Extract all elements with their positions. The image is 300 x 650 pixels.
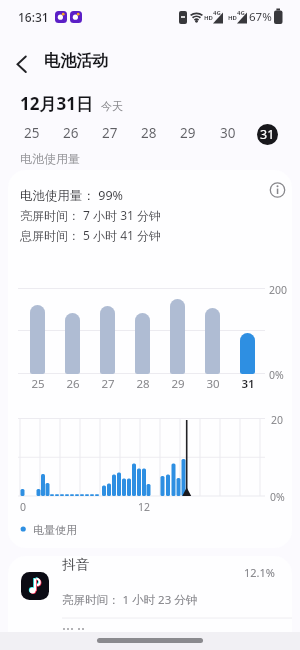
button[interactable] <box>8 556 292 618</box>
staticText: 27 <box>102 124 118 142</box>
staticText: 12月31日 <box>20 92 93 115</box>
button[interactable]: 30 <box>211 122 245 144</box>
staticText: 4G <box>213 9 221 17</box>
staticText: 200 <box>269 283 288 297</box>
staticText: 4G <box>237 9 245 17</box>
staticText: 29 <box>166 376 190 392</box>
staticText: 27 <box>96 376 120 392</box>
staticText: 息屏时间： 5 小时 41 分钟 <box>20 227 162 243</box>
staticText: 16:31 <box>18 9 49 25</box>
button[interactable]: 电池活动 <box>44 51 108 71</box>
staticText: 0 <box>20 500 27 514</box>
staticText: 亮屏时间： 1 小时 23 分钟 <box>62 592 198 608</box>
staticText: 31 <box>260 126 275 143</box>
staticText: 25 <box>24 124 40 142</box>
staticText: 电池使用量： 99% <box>20 187 123 204</box>
staticText: 30 <box>201 376 225 392</box>
staticText: 12 <box>138 500 151 514</box>
staticText: 26 <box>61 376 85 392</box>
button[interactable]: 27 <box>93 122 127 144</box>
staticText: 26 <box>63 124 79 142</box>
staticText: 31 <box>236 376 260 392</box>
button[interactable]: 25 <box>15 122 49 144</box>
staticText: 67% <box>249 9 272 25</box>
staticText: 29 <box>180 124 196 142</box>
staticText: 今天 <box>101 99 123 113</box>
button[interactable]: 29 <box>171 122 205 144</box>
staticText: 0% <box>269 368 284 382</box>
staticText: 28 <box>141 124 157 142</box>
staticText: 电量使用 <box>33 523 77 537</box>
staticText: HD <box>204 14 213 22</box>
staticText: 亮屏时间： 7 小时 31 分钟 <box>20 207 162 223</box>
button[interactable]: 26 <box>54 122 88 144</box>
button[interactable] <box>266 179 288 201</box>
staticText: 12.1% <box>244 565 275 580</box>
button[interactable]: 28 <box>132 122 166 144</box>
staticText: 抖音 <box>62 556 89 573</box>
staticText: 0% <box>270 490 285 504</box>
button[interactable] <box>10 52 36 78</box>
staticText: 25 <box>26 376 50 392</box>
staticText: 28 <box>131 376 155 392</box>
staticText: 30 <box>220 124 236 142</box>
staticText: 20 <box>271 413 284 427</box>
button[interactable]: 31 <box>257 124 278 145</box>
staticText: 电池使用量 <box>20 151 80 166</box>
staticText: 电池活动 <box>44 51 108 71</box>
staticText: HD <box>228 14 237 22</box>
